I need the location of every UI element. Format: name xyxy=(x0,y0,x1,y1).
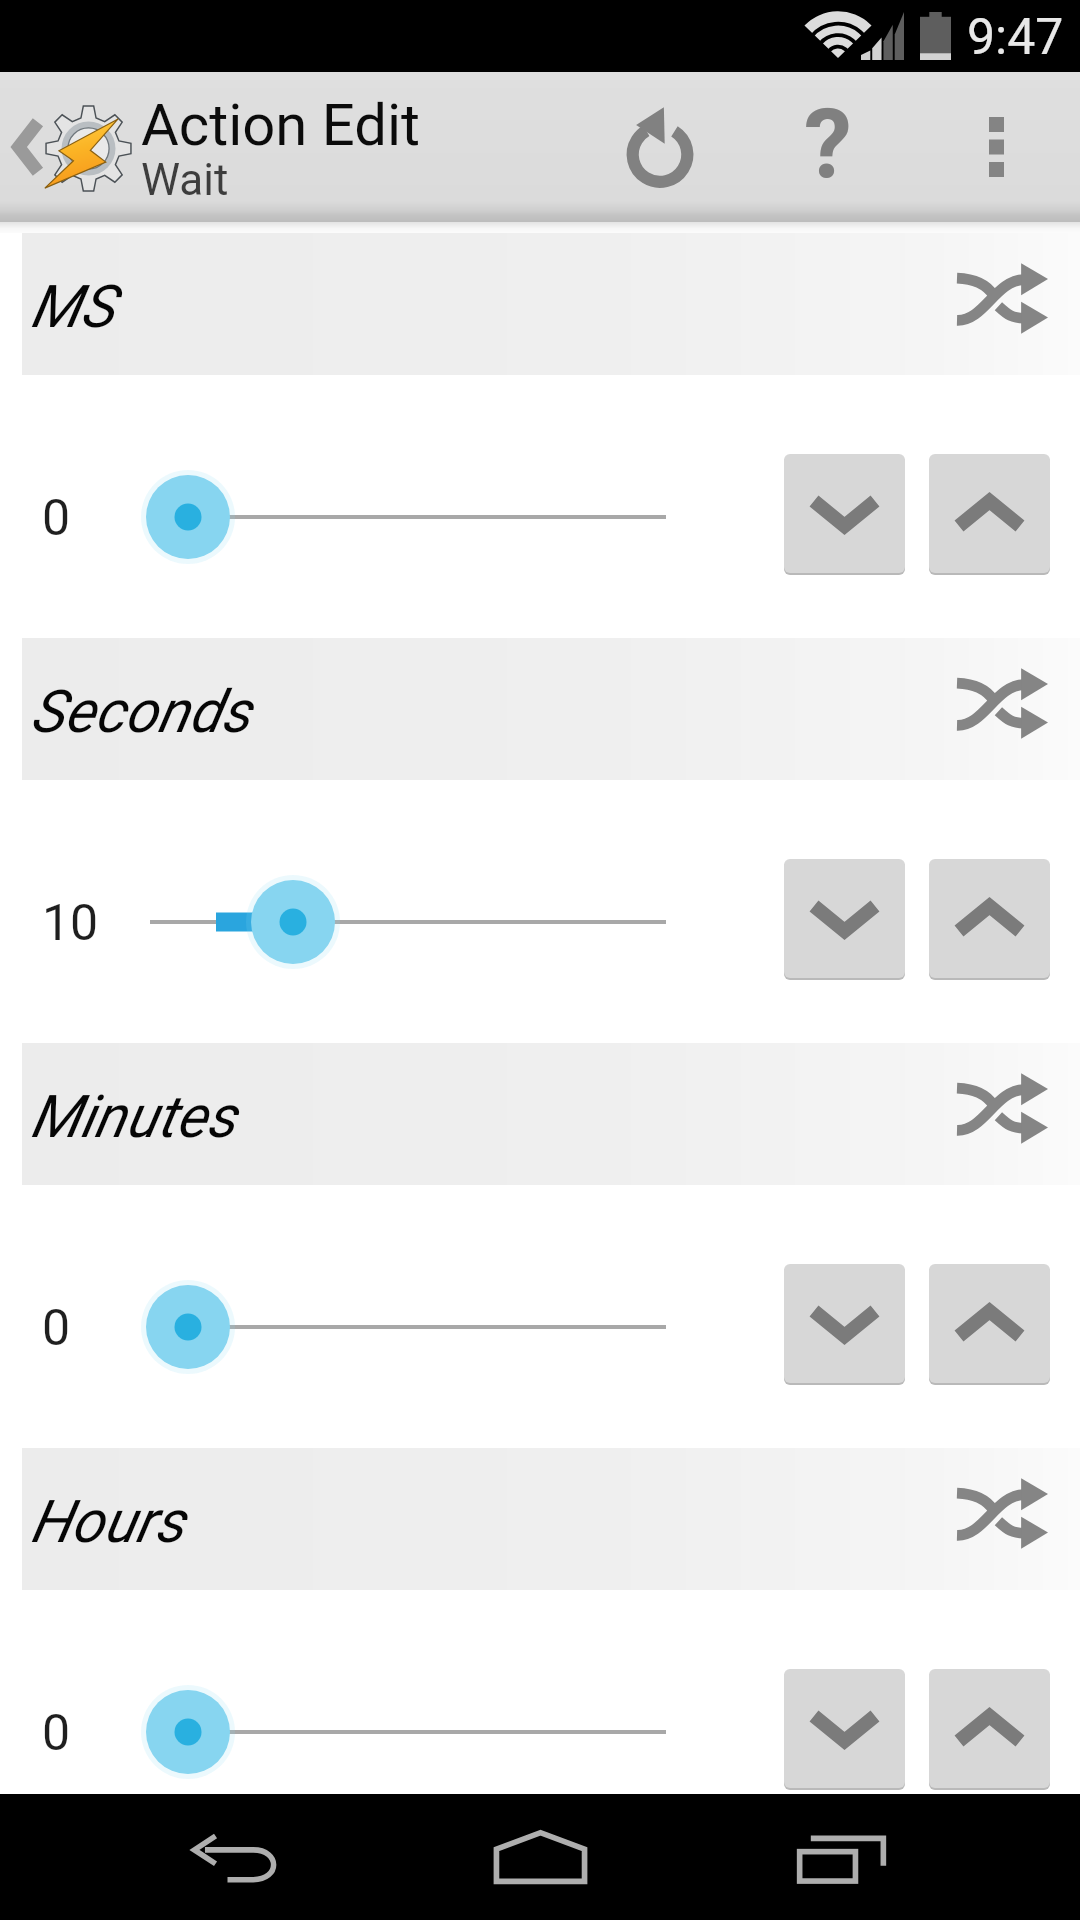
button[interactable]: Randomize value xyxy=(950,1062,1054,1166)
button[interactable]: Increase xyxy=(929,1669,1050,1788)
button[interactable]: Increase xyxy=(929,454,1050,573)
button[interactable]: Randomize value xyxy=(950,1467,1054,1571)
button[interactable] xyxy=(22,1448,1080,1590)
button[interactable] xyxy=(22,233,1080,375)
staticText: Wait xyxy=(141,154,229,206)
button[interactable]: Value slider xyxy=(0,1247,1080,1407)
staticText: Action Edit xyxy=(141,91,420,159)
staticText: 10 xyxy=(42,894,99,953)
staticText: 0 xyxy=(42,1704,71,1763)
button[interactable]: Increase xyxy=(929,1264,1050,1383)
button[interactable]: Increase xyxy=(929,859,1050,978)
button[interactable]: Back xyxy=(139,1794,339,1920)
staticText: 0 xyxy=(42,489,71,548)
button[interactable]: Undo xyxy=(590,72,730,222)
button[interactable]: Decrease xyxy=(784,454,905,573)
staticText: 0 xyxy=(42,1299,71,1358)
button[interactable]: Decrease xyxy=(784,859,905,978)
button[interactable]: Recent apps xyxy=(741,1794,941,1920)
button[interactable]: Randomize value xyxy=(950,657,1054,761)
button[interactable]: Home xyxy=(440,1794,640,1920)
button[interactable]: Randomize value xyxy=(950,252,1054,356)
staticText: 9:47 xyxy=(967,8,1064,67)
button[interactable]: Decrease xyxy=(784,1669,905,1788)
button[interactable]: Value slider xyxy=(0,1652,1080,1812)
button[interactable]: Decrease xyxy=(784,1264,905,1383)
button[interactable]: Value slider xyxy=(0,437,1080,597)
button[interactable]: Help xyxy=(758,72,898,222)
staticText: MS xyxy=(30,272,114,341)
button[interactable] xyxy=(22,1043,1080,1185)
button[interactable]: More options xyxy=(926,72,1066,222)
staticText: Hours xyxy=(30,1487,184,1556)
staticText: Seconds xyxy=(30,677,251,746)
staticText: ? xyxy=(804,88,852,201)
staticText: Minutes xyxy=(30,1082,236,1151)
button[interactable]: Navigate up xyxy=(0,72,146,222)
button[interactable] xyxy=(22,638,1080,780)
button[interactable]: Value slider xyxy=(0,842,1080,1002)
